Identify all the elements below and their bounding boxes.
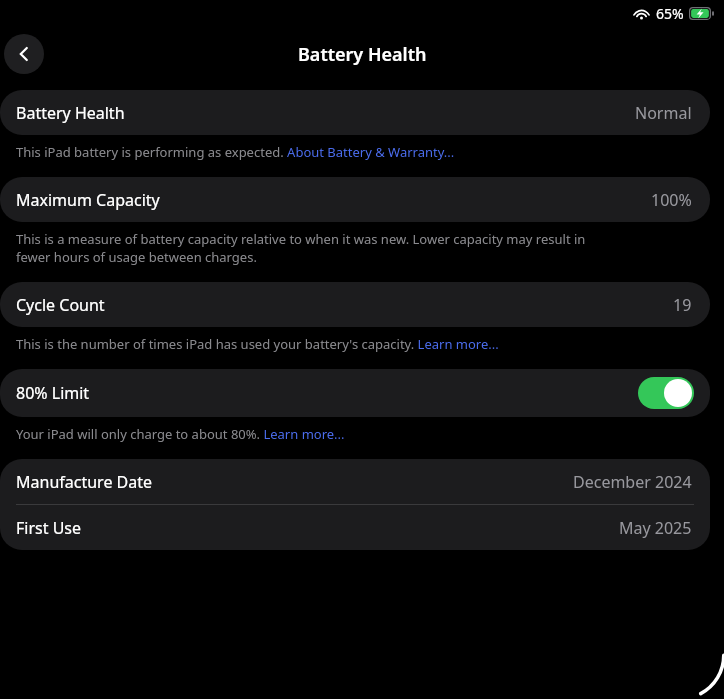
staticText: This is a measure of battery capacity re… — [16, 230, 614, 266]
button[interactable]: 80% Limit — [0, 369, 710, 417]
staticText: December 2024 — [573, 471, 692, 493]
staticText: 19 — [673, 294, 692, 316]
button[interactable]: Manufacture Date — [0, 459, 710, 504]
staticText: Battery Health — [16, 102, 125, 124]
staticText: This is the number of times iPad has use… — [16, 335, 499, 353]
staticText: Maximum Capacity — [16, 189, 160, 211]
staticText: This iPad battery is performing as expec… — [16, 143, 455, 161]
staticText: Battery Health — [298, 42, 427, 67]
button[interactable]: Maximum Capacity — [0, 177, 710, 222]
button[interactable]: First Use — [0, 505, 710, 550]
staticText: 65% — [656, 4, 684, 23]
staticText: Manufacture Date — [16, 471, 153, 493]
button[interactable]: 80% Limit toggle — [638, 377, 694, 409]
button[interactable]: Back — [4, 34, 44, 74]
button[interactable]: Cycle Count — [0, 282, 710, 327]
staticText: First Use — [16, 517, 82, 539]
staticText: Your iPad will only charge to about 80%.… — [16, 425, 345, 443]
staticText: May 2025 — [619, 517, 692, 539]
staticText: 80% Limit — [16, 382, 90, 404]
staticText: Cycle Count — [16, 294, 105, 316]
staticText: 100% — [651, 189, 692, 211]
button[interactable]: Battery Health — [0, 90, 710, 135]
staticText: Normal — [635, 102, 692, 124]
